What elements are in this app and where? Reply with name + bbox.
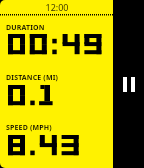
button[interactable]: Pause [113, 0, 144, 168]
staticText: DURATION [6, 23, 45, 33]
staticText: 12:00 [45, 1, 69, 13]
staticText: SPEED (MPH) [6, 123, 52, 133]
staticText: DISTANCE (MI) [6, 73, 59, 83]
